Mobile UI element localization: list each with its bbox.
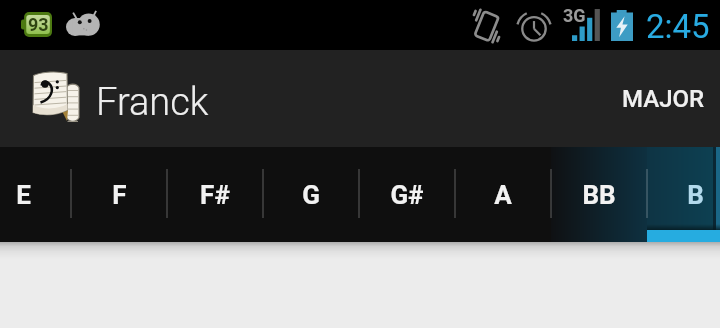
button[interactable]: G# bbox=[359, 147, 455, 242]
staticText: MAJOR bbox=[622, 85, 705, 113]
staticText: G# bbox=[390, 180, 424, 210]
staticText: E bbox=[16, 180, 31, 210]
staticText: Franck bbox=[96, 80, 209, 125]
button[interactable]: E bbox=[0, 147, 71, 242]
staticText: 3G bbox=[563, 5, 586, 26]
staticText: 93 bbox=[28, 14, 49, 35]
other: Android system notification bbox=[65, 9, 102, 39]
button[interactable]: B bbox=[647, 147, 720, 242]
other: Alarm set bbox=[517, 9, 551, 42]
button[interactable]: F# bbox=[167, 147, 263, 242]
button[interactable]: G bbox=[263, 147, 359, 242]
staticText: G bbox=[302, 180, 320, 210]
staticText: B bbox=[687, 180, 704, 210]
other: Battery charging bbox=[611, 10, 633, 41]
staticText: A bbox=[494, 180, 512, 210]
other: Vibrate mode bbox=[466, 8, 507, 44]
button[interactable]: F bbox=[71, 147, 167, 242]
button[interactable]: BB bbox=[551, 147, 647, 242]
staticText: F bbox=[112, 180, 127, 210]
staticText: 2:45 bbox=[646, 7, 710, 46]
staticText: BB bbox=[582, 180, 616, 210]
staticText: F# bbox=[200, 180, 230, 210]
button[interactable]: A bbox=[455, 147, 551, 242]
button[interactable]: Franck bbox=[0, 69, 209, 129]
button[interactable]: MAJOR bbox=[606, 75, 720, 123]
other: Mobile signal 3G bbox=[572, 9, 600, 41]
